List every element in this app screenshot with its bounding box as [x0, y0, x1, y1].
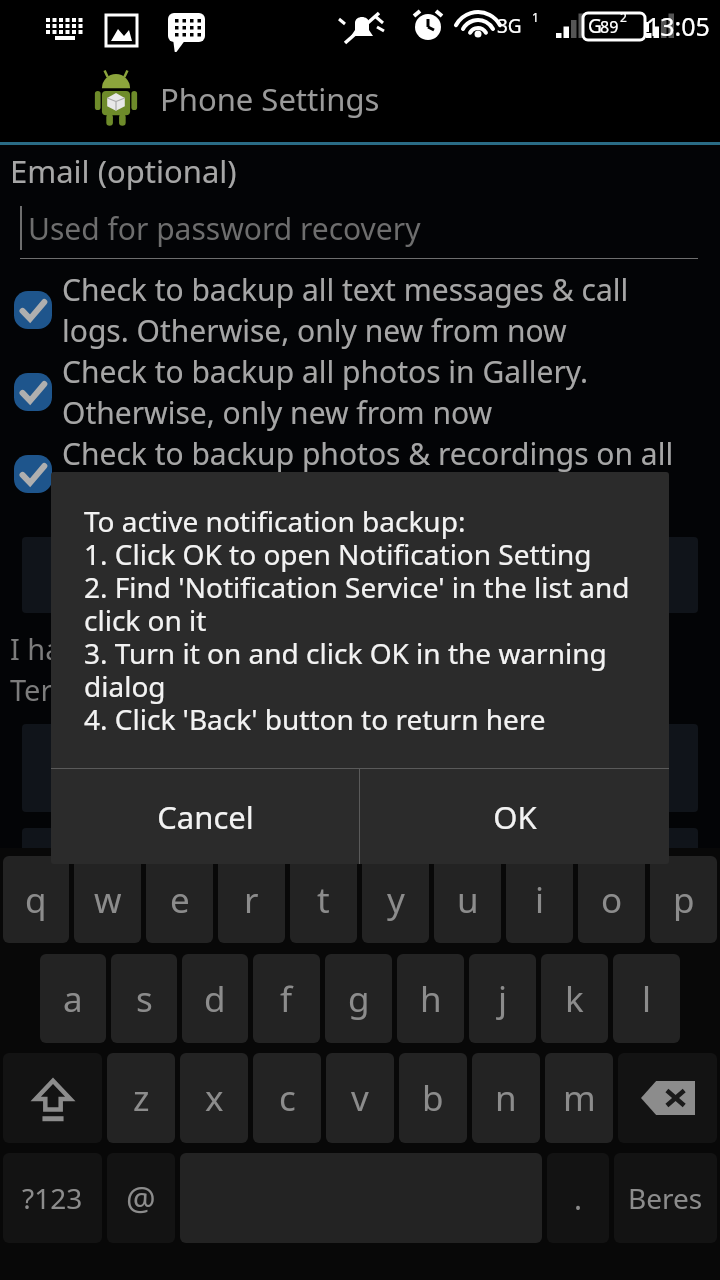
staticText: ?123: [22, 1179, 83, 1217]
staticText: u: [457, 876, 479, 924]
staticText: k: [565, 975, 584, 1023]
staticText: Used for password recovery: [28, 208, 421, 249]
button[interactable]: Beres: [614, 1153, 717, 1243]
button[interactable]: n: [472, 1053, 540, 1143]
button[interactable]: o: [578, 856, 645, 943]
staticText: h: [420, 975, 442, 1023]
button[interactable]: l: [613, 954, 680, 1043]
staticText: y: [387, 876, 405, 924]
button[interactable]: [22, 537, 698, 613]
button[interactable]: k: [541, 954, 608, 1043]
staticText: @: [126, 1176, 156, 1221]
staticText: v: [351, 1074, 369, 1122]
staticText: m: [563, 1074, 596, 1122]
button[interactable]: Check to backup all photos in Gallery. O…: [12, 351, 712, 433]
button[interactable]: x: [180, 1053, 248, 1143]
button[interactable]: Check to backup all text messages & call…: [12, 269, 712, 351]
staticText: 2: [620, 9, 627, 25]
button[interactable]: v: [326, 1053, 394, 1143]
button[interactable]: [22, 828, 698, 886]
staticText: a: [63, 975, 83, 1023]
button[interactable]: f: [253, 954, 320, 1043]
staticText: .: [574, 1178, 583, 1219]
button[interactable]: e: [146, 856, 213, 943]
staticText: l: [642, 975, 652, 1023]
button[interactable]: i: [506, 856, 573, 943]
button[interactable]: Check to backup photos & recordings on a…: [12, 433, 712, 515]
staticText: G: [588, 13, 602, 39]
staticText: z: [133, 1074, 150, 1122]
staticText: w: [94, 876, 122, 924]
button[interactable]: a: [40, 954, 106, 1043]
button[interactable]: h: [397, 954, 464, 1043]
staticText: Phone Settings: [160, 78, 380, 120]
staticText: t: [317, 876, 330, 924]
staticText: o: [601, 876, 623, 924]
button[interactable]: w: [74, 856, 141, 943]
staticText: 89: [600, 16, 619, 38]
staticText: Check to backup all photos in Gallery. O…: [62, 351, 588, 433]
button[interactable]: s: [111, 954, 177, 1043]
button[interactable]: @: [107, 1153, 175, 1243]
staticText: b: [422, 1074, 444, 1122]
button[interactable]: u: [434, 856, 501, 943]
staticText: Check to backup all text messages & call…: [62, 269, 629, 351]
button[interactable]: r: [218, 856, 285, 943]
staticText: f: [280, 975, 293, 1023]
staticText: OK: [493, 796, 537, 838]
button[interactable]: g: [325, 954, 392, 1043]
staticText: Cancel: [157, 796, 254, 838]
button[interactable]: .: [547, 1153, 609, 1243]
staticText: Check to backup photos & recordings on a…: [62, 433, 674, 515]
button[interactable]: z: [107, 1053, 175, 1143]
staticText: q: [25, 876, 47, 924]
staticText: x: [205, 1074, 224, 1122]
button[interactable]: q: [3, 856, 69, 943]
staticText: 1: [532, 9, 539, 25]
button[interactable]: p: [650, 856, 717, 943]
staticText: 3G: [497, 13, 522, 39]
staticText: e: [170, 876, 190, 924]
staticText: To active notification backup: 1. Click …: [84, 502, 630, 738]
button[interactable]: b: [399, 1053, 467, 1143]
button[interactable]: d: [182, 954, 248, 1043]
staticText: i: [535, 876, 545, 924]
button[interactable]: [22, 724, 698, 812]
staticText: g: [348, 975, 370, 1023]
button[interactable]: Backspace: [618, 1053, 717, 1143]
staticText: Beres: [628, 1179, 703, 1217]
staticText: 13:05: [646, 9, 710, 43]
staticText: n: [495, 1074, 517, 1122]
staticText: I have read and agree to Privacy Policy …: [10, 629, 594, 710]
button[interactable]: ?123: [3, 1153, 102, 1243]
button[interactable]: OK: [360, 769, 669, 864]
button[interactable]: y: [362, 856, 429, 943]
button[interactable]: m: [545, 1053, 613, 1143]
staticText: p: [673, 876, 695, 924]
button[interactable]: Cancel: [51, 769, 359, 864]
button[interactable]: c: [253, 1053, 321, 1143]
button[interactable]: Shift: [3, 1053, 102, 1143]
staticText: c: [279, 1074, 296, 1122]
button[interactable]: t: [290, 856, 357, 943]
staticText: Email (optional): [10, 150, 237, 192]
staticText: j: [498, 975, 508, 1023]
staticText: d: [204, 975, 226, 1023]
staticText: r: [244, 876, 259, 924]
button[interactable]: j: [469, 954, 536, 1043]
staticText: s: [136, 975, 153, 1023]
